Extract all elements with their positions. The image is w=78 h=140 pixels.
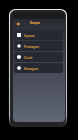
button[interactable]: Circle bbox=[14, 52, 63, 62]
staticText: Circle bbox=[24, 55, 33, 60]
staticText: Shapes bbox=[30, 21, 41, 25]
staticText: Pentagon bbox=[24, 44, 40, 49]
button[interactable]: Hexagon bbox=[14, 63, 63, 73]
button[interactable]: Square bbox=[14, 30, 63, 40]
staticText: Square bbox=[24, 33, 36, 38]
button[interactable]: Pentagon bbox=[14, 41, 63, 51]
button[interactable]: Navigate up bbox=[13, 19, 22, 28]
staticText: Hexagon bbox=[24, 66, 39, 71]
